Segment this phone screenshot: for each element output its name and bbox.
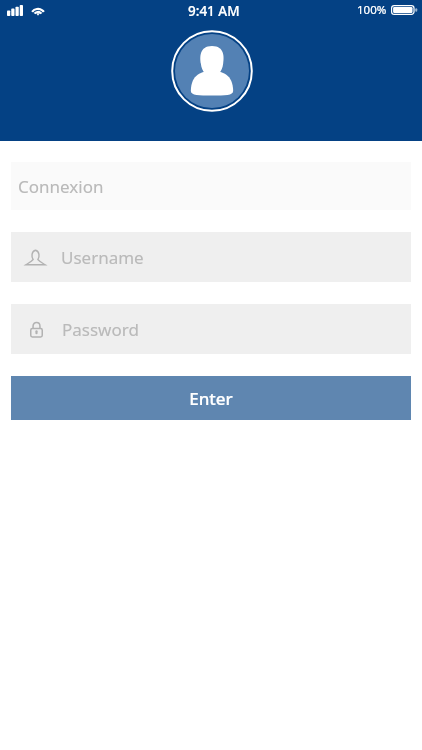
staticText: Connexion [18, 175, 104, 198]
button[interactable]: Enter [11, 376, 411, 420]
staticText: 100% [357, 2, 387, 18]
other: Cellular signal [7, 5, 23, 16]
staticText: Password [62, 318, 139, 341]
other: Wi-Fi [30, 5, 46, 16]
button[interactable]: Connexion [11, 162, 411, 210]
button[interactable]: Username [11, 232, 411, 282]
staticText: Username [61, 246, 144, 269]
staticText: Enter [189, 387, 233, 410]
button[interactable]: Profile picture [169, 28, 255, 114]
staticText: 9:41 AM [188, 2, 240, 20]
other: Battery 100 percent [391, 5, 418, 15]
button[interactable]: Password [11, 304, 411, 354]
